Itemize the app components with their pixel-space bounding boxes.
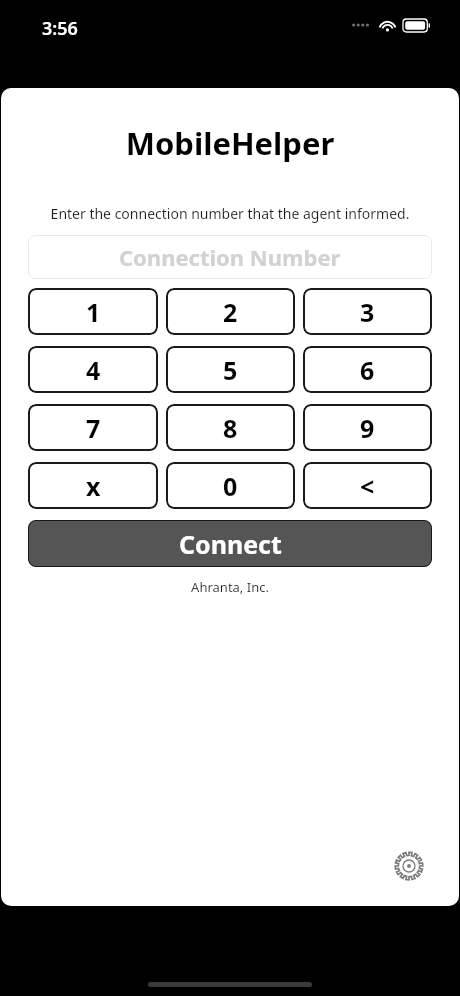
button[interactable]: 4 <box>28 346 158 393</box>
staticText: 2 <box>223 295 238 329</box>
staticText: 1 <box>86 295 101 329</box>
staticText: MobileHelper <box>1 122 459 164</box>
staticText: Enter the connection number that the age… <box>1 204 459 223</box>
staticText: 3 <box>360 295 375 329</box>
staticText: Connection Number <box>119 242 341 272</box>
staticText: 8 <box>223 411 238 445</box>
staticText: Connect <box>179 527 282 561</box>
staticText: 3:56 <box>42 16 78 41</box>
button[interactable]: x <box>28 462 158 509</box>
staticText: < <box>360 469 375 503</box>
staticText: 4 <box>86 353 101 387</box>
button[interactable]: 9 <box>303 404 432 451</box>
button[interactable]: 1 <box>28 288 158 335</box>
staticText: x <box>86 469 101 503</box>
button[interactable]: Settings <box>391 848 427 884</box>
button[interactable]: 5 <box>166 346 295 393</box>
staticText: 6 <box>360 353 375 387</box>
button[interactable]: Connect <box>28 520 432 567</box>
staticText: 9 <box>360 411 375 445</box>
button[interactable]: 2 <box>166 288 295 335</box>
button[interactable]: 0 <box>166 462 295 509</box>
staticText: 5 <box>223 353 238 387</box>
button[interactable]: 3 <box>303 288 432 335</box>
staticText: 0 <box>223 469 238 503</box>
button[interactable]: Connection Number <box>28 235 432 279</box>
staticText: 7 <box>86 411 101 445</box>
button[interactable]: 6 <box>303 346 432 393</box>
button[interactable]: 7 <box>28 404 158 451</box>
staticText: Ahranta, Inc. <box>1 578 459 596</box>
button[interactable]: < <box>303 462 432 509</box>
button[interactable]: 8 <box>166 404 295 451</box>
